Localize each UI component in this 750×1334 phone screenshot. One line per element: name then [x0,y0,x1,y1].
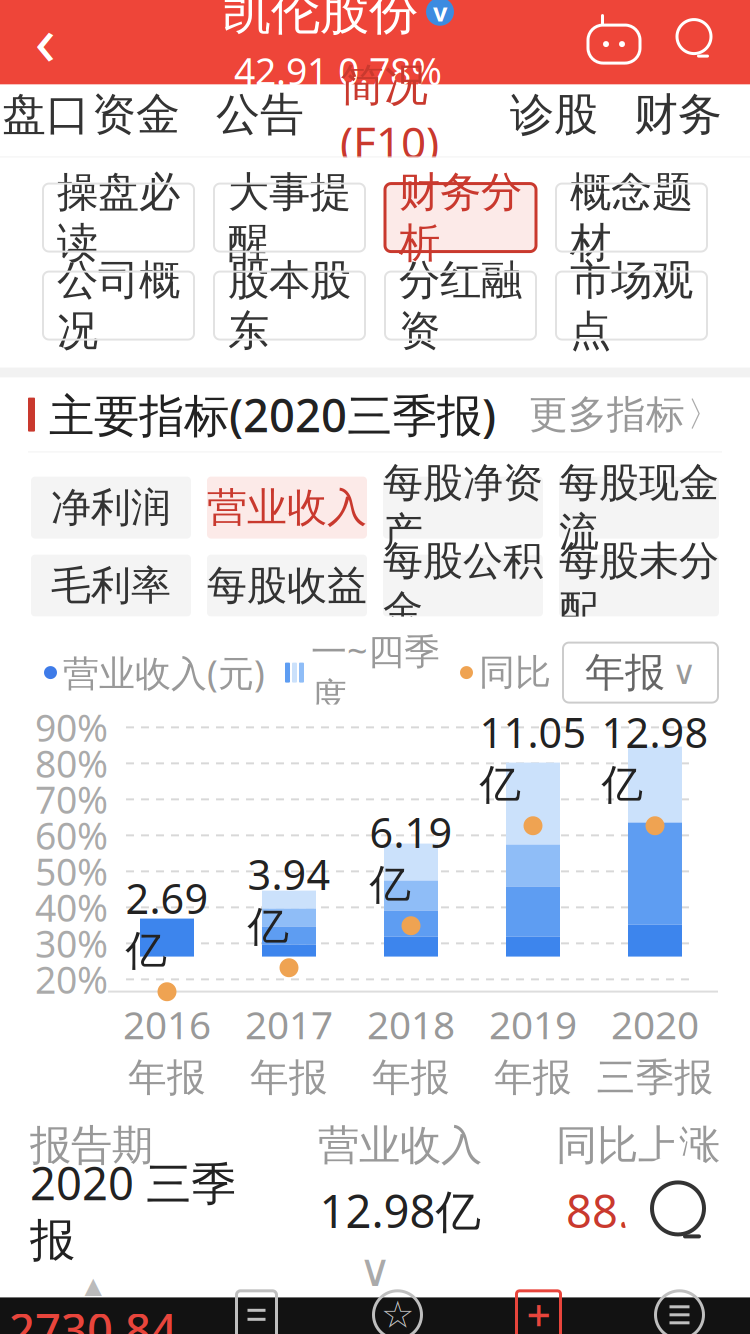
button[interactable]: 简况(F10) [340,85,510,157]
staticText: 三季报 [596,1054,713,1101]
staticText: 财务分析 [399,167,522,268]
staticText: 资金 [92,88,180,142]
button[interactable]: 市场观点 [556,272,707,340]
button[interactable]: 净利润 [31,477,191,539]
button[interactable]: 每股收益 [207,555,367,617]
staticText: 每股现金流 [559,458,719,557]
staticText: 2019 [489,999,577,1050]
staticText: + [526,1286,550,1334]
staticText: 40% [35,883,108,932]
button[interactable]: 诊股 [510,85,634,157]
staticText: 每股净资产 [383,458,543,557]
staticText: 2.69亿 [125,871,208,976]
staticText: 90% [35,703,108,752]
button[interactable]: Back [0,0,90,85]
staticText: 50% [35,847,108,896]
button[interactable]: 每股未分配 [559,555,719,617]
staticText: 2017 [245,999,333,1050]
button[interactable]: 操盘必读 [43,184,194,252]
staticText: 净利润 [51,483,171,532]
button[interactable]: ▲ [0,1297,186,1334]
staticText: 88.13% [566,1180,720,1240]
button[interactable]: 每股公积金 [383,555,543,617]
staticText: 20% [35,955,108,1004]
staticText: 市场观点 [570,255,693,356]
staticText: 大事提醒 [228,167,351,268]
staticText: 2020 [611,999,699,1050]
button[interactable]: Expand [305,1243,445,1297]
staticText: 3.94亿 [247,847,330,952]
staticText: ▲ [84,1272,101,1298]
button[interactable]: 每股净资产 [383,477,543,539]
staticText: 42.91 0.78% [234,46,442,96]
button[interactable]: Search [624,1156,732,1264]
staticText: ∨ [358,1245,391,1296]
staticText: 年报 [372,1054,450,1101]
staticText: 每股未分配 [559,536,719,635]
button[interactable]: 分红融资 [385,272,536,340]
staticText: 简况(F10) [340,58,439,171]
button[interactable]: Search [670,15,718,63]
button[interactable]: + [468,1297,609,1334]
staticText: 70% [35,775,108,824]
staticText: 营业收入(元) [63,649,265,696]
button[interactable]: 更多指标 [529,379,722,450]
staticText: 盘口 [2,88,90,142]
button[interactable]: 下单 [186,1297,327,1334]
staticText: 营业收入 [207,483,367,532]
button[interactable]: 每股现金流 [559,477,719,539]
button[interactable]: 公司概况 [43,272,194,340]
button[interactable]: 公告 [216,85,340,157]
staticText: 同比上涨 [556,1120,720,1171]
button[interactable]: 资金 [92,85,216,157]
staticText: 12.98亿 [601,705,708,810]
button[interactable]: 大事提醒 [214,184,365,252]
staticText: ‹ [34,0,55,85]
staticText: 毛利率 [51,561,171,610]
staticText: 公告 [216,88,304,142]
staticText: v [433,0,447,29]
button[interactable]: Assistant [586,12,642,66]
staticText: 一~四季度 [311,627,440,719]
staticText: 年报 [494,1054,572,1101]
staticText: 每股收益 [207,561,367,610]
staticText: 2730.84 [9,1299,177,1334]
staticText: 11.05亿 [479,705,586,810]
button[interactable]: ☆ [327,1297,468,1334]
button[interactable]: 毛利率 [31,555,191,617]
staticText: 概念题材 [570,167,693,268]
staticText: 同比 [479,650,551,695]
staticText: 凯伦股份 [222,0,418,42]
staticText: 60% [35,811,108,860]
staticText: 2016 [123,999,211,1050]
staticText: 主要指标(2020三季报) [49,384,496,445]
button[interactable]: 概念题材 [556,184,707,252]
staticText: 诊股 [510,88,598,142]
staticText: 〉 [687,393,722,436]
staticText: 分红融资 [399,255,522,356]
staticText: 操盘必读 [57,167,180,268]
staticText: 报告期 [30,1120,153,1171]
staticText: ☆ [381,1294,414,1334]
staticText: 更多指标 [529,391,685,438]
button[interactable]: 财务 [634,85,750,157]
button[interactable]: 更多 [609,1297,750,1334]
staticText: 营业收入 [318,1120,482,1171]
staticText: 股本股东 [228,255,351,356]
button[interactable]: 年报 [563,643,718,703]
staticText: 年报 [128,1054,206,1101]
button[interactable]: 财务分析 [385,184,536,252]
staticText: 每股公积金 [383,536,543,635]
staticText: 6.19亿 [369,805,452,910]
staticText: 30% [35,919,108,968]
staticText: 财务 [634,88,722,142]
staticText: 12.98亿 [319,1180,480,1240]
staticText: 年报 [585,648,665,697]
button[interactable]: 股本股东 [214,272,365,340]
staticText: 2018 [367,999,455,1050]
staticText: ∨ [672,654,696,691]
staticText: 2020 三季报 [30,1152,236,1268]
staticText: 公司概况 [57,255,180,356]
button[interactable]: 营业收入 [207,477,367,539]
button[interactable]: 盘口 [0,85,92,157]
